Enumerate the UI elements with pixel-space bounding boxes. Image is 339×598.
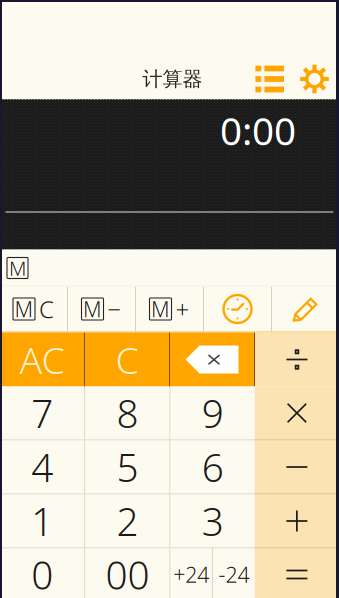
button[interactable]: M — [0, 286, 67, 331]
button[interactable]: +24 — [170, 548, 212, 598]
staticText: 2 — [116, 495, 138, 547]
staticText: M — [83, 295, 102, 323]
button[interactable]: Settings — [300, 64, 329, 93]
button[interactable]: 3 — [170, 494, 255, 547]
button[interactable] — [272, 286, 339, 331]
staticText: 6 — [202, 441, 224, 493]
button[interactable]: M — [68, 286, 135, 331]
staticText: 计算器 — [142, 67, 202, 91]
staticText: 3 — [202, 495, 224, 547]
button[interactable]: 00 — [85, 548, 169, 598]
staticText: AC — [19, 335, 64, 384]
staticText: +24 — [173, 560, 209, 589]
button[interactable] — [255, 440, 339, 493]
button[interactable]: 4 — [0, 440, 84, 493]
button[interactable]: 1 — [0, 494, 84, 547]
button[interactable]: 7 — [0, 386, 84, 439]
staticText: 9 — [202, 387, 224, 439]
button[interactable]: Delete — [170, 332, 254, 386]
staticText: 00 — [105, 549, 149, 598]
staticText: M — [9, 255, 26, 281]
button[interactable]: AC — [0, 332, 84, 386]
staticText: M — [151, 295, 170, 323]
staticText: 7 — [31, 387, 53, 439]
staticText: 5 — [116, 441, 138, 493]
staticText: − — [107, 293, 121, 325]
button[interactable] — [204, 286, 271, 331]
staticText: 4 — [31, 441, 53, 493]
button[interactable] — [255, 548, 339, 598]
staticText: C — [39, 293, 54, 325]
staticText: 0 — [31, 549, 53, 598]
staticText: M — [14, 295, 33, 323]
button[interactable] — [255, 386, 339, 439]
button[interactable] — [255, 494, 339, 547]
button[interactable]: 8 — [85, 386, 169, 439]
button[interactable]: History — [255, 66, 284, 92]
staticText: -24 — [218, 560, 249, 589]
button[interactable]: C — [85, 332, 169, 386]
button[interactable]: -24 — [213, 548, 255, 598]
button[interactable] — [255, 332, 339, 386]
button[interactable]: 0 — [0, 548, 84, 598]
button[interactable]: 5 — [85, 440, 169, 493]
staticText: C — [115, 335, 138, 384]
button[interactable]: 6 — [170, 440, 255, 493]
staticText: 0:00 — [220, 104, 296, 156]
staticText: + — [175, 293, 189, 325]
staticText: 8 — [116, 387, 138, 439]
staticText: 1 — [31, 495, 53, 547]
button[interactable]: 9 — [170, 386, 255, 439]
button[interactable]: 2 — [85, 494, 169, 547]
button[interactable]: M — [136, 286, 203, 331]
